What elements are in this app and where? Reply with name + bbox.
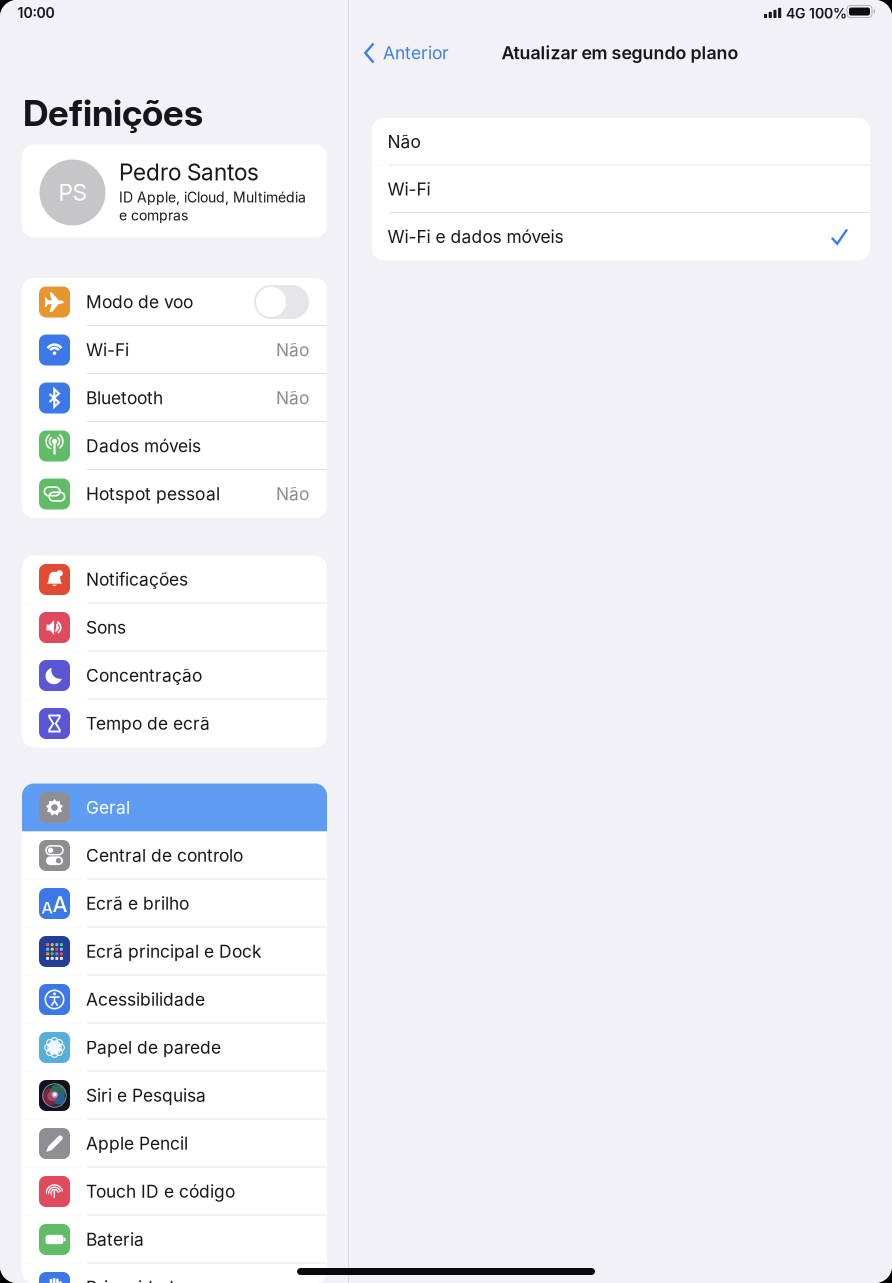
button[interactable]: Não — [372, 118, 870, 165]
button[interactable]: Central de controlo — [22, 831, 327, 879]
staticText: Notificações — [86, 569, 188, 590]
staticText: Não — [276, 387, 309, 408]
button[interactable]: Papel de parede — [22, 1023, 327, 1071]
staticText: Sons — [86, 617, 126, 638]
staticText: Wi-Fi — [86, 339, 129, 360]
staticText: Dados móveis — [86, 435, 201, 456]
staticText: Definições — [23, 91, 203, 135]
button[interactable]: Hotspot pessoal — [22, 470, 327, 518]
button[interactable]: Dados móveis — [22, 422, 327, 470]
button[interactable]: Wi-Fi — [22, 326, 327, 374]
staticText: Bateria — [86, 1229, 144, 1250]
button[interactable]: A — [22, 879, 327, 927]
staticText: e compras — [119, 207, 188, 224]
staticText: ID Apple, iCloud, Multimédia — [119, 189, 306, 206]
staticText: Tempo de ecrã — [86, 713, 210, 734]
button[interactable]: Bateria — [22, 1215, 327, 1263]
staticText: Não — [387, 131, 420, 152]
staticText: Siri e Pesquisa — [86, 1085, 206, 1106]
staticText: Anterior — [383, 42, 449, 63]
staticText: Concentração — [86, 665, 202, 686]
button[interactable]: Sons — [22, 603, 327, 651]
staticText: Atualizar em segundo plano — [501, 42, 738, 63]
staticText: Bluetooth — [86, 387, 163, 408]
staticText: Ecrã principal e Dock — [86, 941, 262, 962]
button[interactable]: Bluetooth — [22, 374, 327, 422]
staticText: Não — [276, 483, 309, 504]
staticText: Privacidade — [86, 1277, 184, 1283]
button[interactable]: Tempo de ecrã — [22, 699, 327, 747]
button[interactable]: Concentração — [22, 651, 327, 699]
staticText: PS — [58, 179, 86, 206]
button[interactable]: Ecrã principal e Dock — [22, 927, 327, 975]
button[interactable]: PS — [22, 144, 327, 237]
staticText: Touch ID e código — [86, 1181, 235, 1202]
button[interactable]: Wi-Fi — [372, 165, 870, 213]
staticText: Geral — [86, 797, 130, 818]
button[interactable]: Notificações — [22, 555, 327, 603]
staticText: Modo de voo — [86, 291, 193, 312]
staticText: 4G 100% — [786, 5, 847, 22]
staticText: Papel de parede — [86, 1037, 221, 1058]
staticText: A — [41, 898, 52, 917]
staticText: Não — [276, 339, 309, 360]
button[interactable]: Touch ID e código — [22, 1167, 327, 1215]
staticText: A — [52, 892, 67, 917]
staticText: 10:00 — [17, 4, 54, 21]
button[interactable]: Siri e Pesquisa — [22, 1071, 327, 1119]
button[interactable]: Anterior — [350, 33, 461, 73]
button[interactable]: Apple Pencil — [22, 1119, 327, 1167]
staticText: Acessibilidade — [86, 989, 205, 1010]
staticText: Wi-Fi e dados móveis — [387, 226, 563, 247]
button[interactable]: Privacidade — [22, 1263, 327, 1283]
staticText: Apple Pencil — [86, 1133, 188, 1154]
button[interactable]: Geral — [22, 783, 327, 831]
button[interactable]: Wi-Fi e dados móveis — [372, 213, 870, 260]
staticText: Central de controlo — [86, 845, 243, 866]
staticText: Hotspot pessoal — [86, 483, 220, 504]
staticText: Pedro Santos — [119, 158, 259, 186]
staticText: Wi-Fi — [387, 179, 430, 200]
button[interactable]: Modo de voo — [22, 278, 327, 326]
button[interactable]: Acessibilidade — [22, 975, 327, 1023]
staticText: Ecrã e brilho — [86, 893, 189, 914]
